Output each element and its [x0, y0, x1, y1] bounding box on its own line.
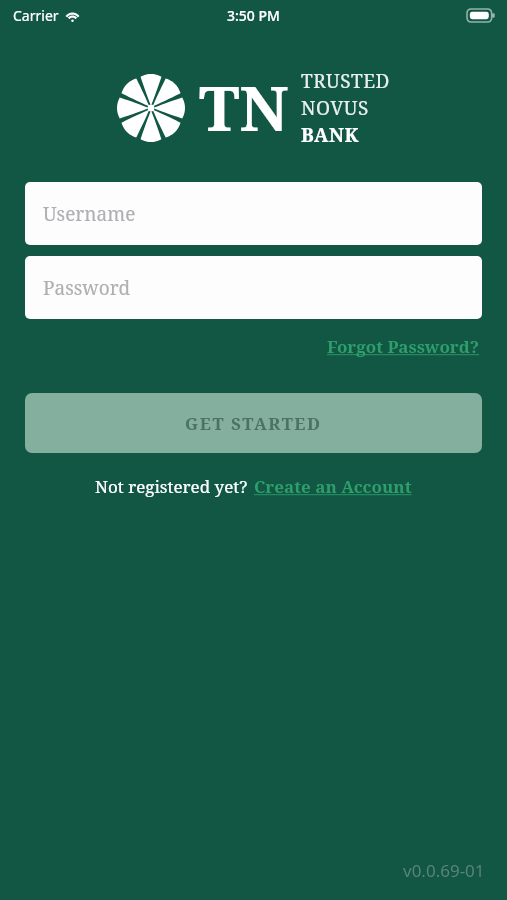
- button[interactable]: Username: [25, 182, 482, 245]
- button[interactable]: Create an Account: [254, 475, 412, 498]
- staticText: Forgot Password?: [327, 335, 480, 358]
- staticText: Create an Account: [254, 475, 412, 498]
- staticText: TRUSTED: [301, 68, 390, 94]
- staticText: BANK: [301, 122, 360, 148]
- staticText: GET STARTED: [185, 412, 322, 435]
- staticText: NOVUS: [301, 95, 369, 121]
- staticText: 3:50 PM: [227, 6, 280, 25]
- button[interactable]: GET STARTED: [25, 393, 482, 453]
- staticText: Username: [43, 201, 136, 227]
- button[interactable]: Forgot Password?: [325, 333, 482, 360]
- staticText: TN: [199, 65, 289, 149]
- staticText: Password: [43, 275, 131, 301]
- staticText: v0.0.69-01: [403, 859, 485, 882]
- staticText: Not registered yet?: [95, 475, 248, 498]
- button[interactable]: Password: [25, 256, 482, 319]
- staticText: Carrier: [13, 6, 59, 25]
